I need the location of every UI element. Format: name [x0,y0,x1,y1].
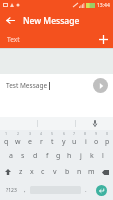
staticText: 13:44 [97,2,110,9]
staticText: . [85,186,87,194]
staticText: m [88,167,95,177]
staticText: New Message [23,15,80,27]
button[interactable]: k [86,148,97,164]
button[interactable]: Back [0,10,21,31]
staticText: Test Message [6,81,48,90]
staticText: 8 [84,131,87,136]
staticText: z [19,167,23,177]
staticText: q [4,137,9,147]
button[interactable]: 5 [47,130,58,148]
button[interactable]: Shift [0,164,15,180]
staticText: ?123 [6,187,17,194]
button[interactable]: 6 [58,130,69,148]
staticText: k [90,151,94,161]
button[interactable]: Backspace [97,164,113,180]
staticText: h [67,151,72,161]
staticText: n [77,167,82,177]
staticText: f [46,151,49,161]
button[interactable]: 2 [12,130,24,148]
staticText: l [102,151,104,161]
button[interactable]: l [97,148,108,164]
staticText: 5 [51,131,54,136]
staticText: e [28,137,32,147]
staticText: p [105,137,110,147]
staticText: b [65,167,70,177]
staticText: i [85,137,87,147]
staticText: r [40,137,43,147]
button[interactable]: Send [93,78,108,93]
button[interactable]: z [15,164,26,180]
button[interactable]: Enter [91,180,111,200]
staticText: 9 [95,131,98,136]
button[interactable]: m [85,164,97,180]
staticText: 6 [63,131,66,136]
button[interactable]: Add recipient [93,31,113,48]
staticText: x [30,167,34,177]
staticText: t [51,137,54,147]
button[interactable]: Voice input [76,117,113,130]
staticText: o [94,137,99,147]
staticText: a [9,151,13,161]
button[interactable]: c [37,164,49,180]
staticText: s [21,151,25,161]
staticText: , [24,186,26,194]
button[interactable]: 3 [24,130,36,148]
button[interactable]: x [26,164,37,180]
button[interactable]: g [53,148,64,164]
staticText: 1 [5,131,8,136]
staticText: 3 [29,131,32,136]
staticText: g [56,151,61,161]
button[interactable]: f [41,148,53,164]
staticText: w [15,137,21,147]
button[interactable]: b [61,164,73,180]
staticText: c [41,167,45,177]
staticText: 7 [73,131,76,136]
button[interactable]: ?123 [2,180,20,200]
button[interactable]: 1 [0,130,12,148]
button[interactable]: 4 [36,130,47,148]
staticText: 2 [17,131,20,136]
button[interactable]: 0 [102,130,113,148]
button[interactable]: v [49,164,61,180]
button[interactable]: Text [7,31,93,48]
button[interactable]: n [73,164,85,180]
button[interactable]: . [81,180,91,200]
button[interactable]: 7 [69,130,80,148]
button[interactable]: s [17,148,29,164]
button[interactable]: d [29,148,41,164]
staticText: y [62,137,66,147]
staticText: v [53,167,57,177]
button[interactable]: 8 [80,130,91,148]
staticText: Text [7,35,20,44]
staticText: 0 [106,131,109,136]
button[interactable]: j [75,148,86,164]
button[interactable]: h [64,148,75,164]
button[interactable]: a [5,148,17,164]
staticText: d [33,151,38,161]
button[interactable]: 9 [91,130,102,148]
button[interactable]: , [20,180,30,200]
staticText: u [72,137,77,147]
staticText: 4 [40,131,43,136]
staticText: j [80,151,82,161]
